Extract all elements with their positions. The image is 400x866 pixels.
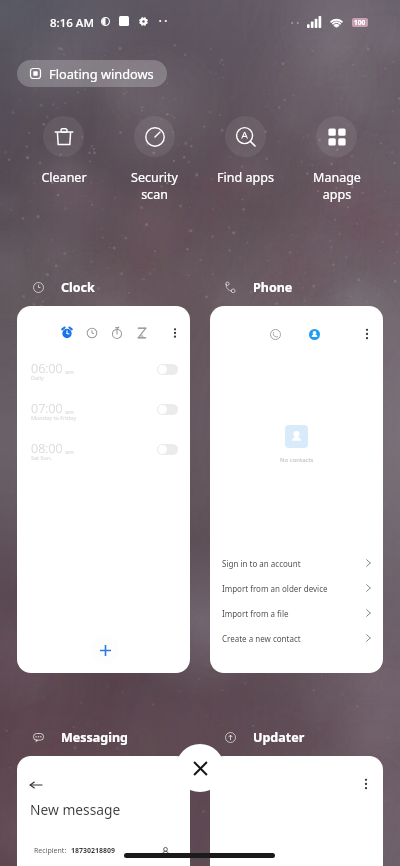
button[interactable]: Security scan	[109, 116, 200, 203]
button[interactable]: Updater	[225, 727, 305, 747]
button[interactable]: Import from an older device	[222, 577, 372, 599]
button[interactable]: Toggle alarm	[157, 364, 178, 375]
staticText: am	[65, 448, 74, 456]
staticText: am	[65, 408, 74, 416]
button[interactable]: Import from a file	[222, 602, 372, 624]
staticText: Daily	[31, 374, 44, 381]
staticText: Sign in to an account	[222, 558, 301, 569]
button[interactable]: Phone	[225, 277, 293, 297]
staticText: am	[65, 368, 74, 376]
staticText: 8:16 AM	[50, 15, 94, 31]
staticText: Import from an older device	[222, 583, 328, 594]
button[interactable]: Alarm	[61, 327, 73, 339]
staticText: Import from a file	[222, 608, 289, 619]
staticText: Create a new contact	[222, 633, 301, 644]
staticText: New message	[30, 800, 121, 819]
staticText: Cleaner	[41, 169, 87, 186]
staticText: Security scan	[131, 169, 178, 203]
button[interactable]: Cleaner	[18, 116, 109, 186]
staticText: 100	[354, 18, 366, 27]
button[interactable]: Sign in to an account	[222, 552, 372, 574]
button[interactable]: Stopwatch	[111, 327, 123, 339]
staticText: Sat Sun.	[31, 454, 52, 461]
staticText: 06:00	[31, 360, 63, 377]
staticText: 18730218809	[71, 846, 116, 856]
button[interactable]: World clock	[86, 327, 98, 339]
button[interactable]: More options	[361, 328, 373, 340]
button[interactable]: Find apps	[200, 116, 291, 186]
staticText: No contacts	[280, 456, 314, 464]
button[interactable]: Toggle alarm	[157, 444, 178, 455]
staticText: Monday to Friday	[31, 414, 76, 421]
button[interactable]: More options	[360, 778, 372, 790]
button[interactable]: Alarm	[17, 306, 190, 673]
button[interactable]: Manage apps	[291, 116, 382, 203]
button[interactable]: 07:00	[17, 400, 190, 430]
staticText: Clock	[61, 279, 95, 296]
button[interactable]: 08:00	[17, 440, 190, 470]
button[interactable]: Clock	[33, 277, 95, 297]
button[interactable]: Create a new contact	[222, 627, 372, 649]
button[interactable]: Floating windows	[17, 60, 167, 87]
button[interactable]: More options	[210, 756, 383, 866]
staticText: Floating windows	[49, 65, 154, 82]
button[interactable]: Messaging	[33, 727, 128, 747]
staticText: Updater	[253, 729, 305, 746]
button[interactable]: 06:00	[17, 360, 190, 390]
staticText: 07:00	[31, 400, 63, 417]
button[interactable]: More options	[210, 306, 383, 673]
button[interactable]: Timer	[136, 327, 148, 339]
staticText: Messaging	[61, 729, 128, 746]
button[interactable]: Close	[176, 744, 224, 792]
staticText: 08:00	[31, 440, 63, 457]
button[interactable]: Add alarm	[91, 636, 119, 664]
staticText: Phone	[253, 279, 293, 296]
button[interactable]: Toggle alarm	[157, 404, 178, 415]
button[interactable]: Back	[17, 756, 190, 866]
button[interactable]: Back	[29, 778, 43, 792]
button[interactable]: More options	[169, 327, 181, 339]
staticText: Manage apps	[313, 169, 361, 203]
staticText: Find apps	[217, 169, 274, 186]
staticText: Recipient:	[34, 846, 67, 856]
